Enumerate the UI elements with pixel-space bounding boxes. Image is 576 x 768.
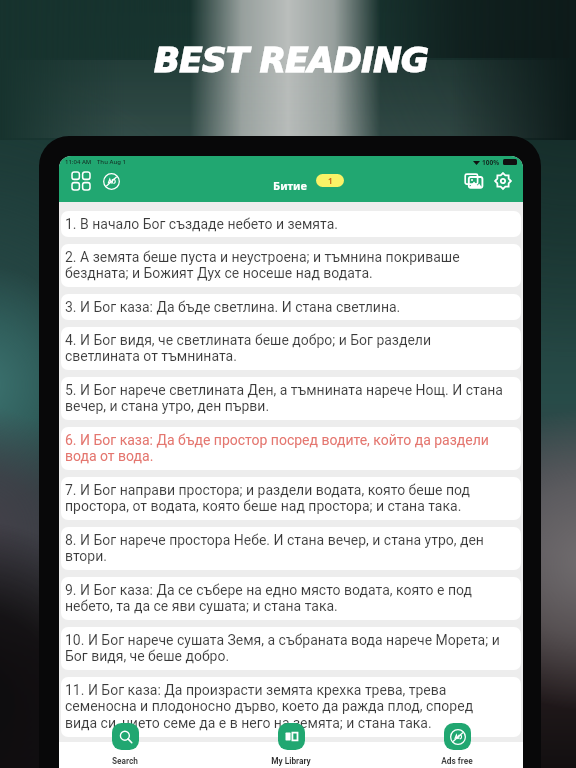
- staticText: 8. И Бог нарече простора Небе. И стана в…: [65, 532, 507, 565]
- button[interactable]: 11. И Бог каза: Да произрасти земята кре…: [61, 677, 521, 737]
- button[interactable]: My Library: [264, 742, 318, 768]
- button[interactable]: 5. И Бог нарече светлината Ден, а тъмнин…: [61, 377, 521, 420]
- staticText: 1. В начало Бог създаде небето и земята.: [65, 216, 338, 232]
- staticText: Ads free: [441, 756, 473, 766]
- staticText: 2. А земята беше пуста и неустроена; и т…: [65, 249, 507, 282]
- button[interactable]: 1. В начало Бог създаде небето и земята.: [61, 211, 521, 237]
- button[interactable]: 4. И Бог видя, че светлината беше добро;…: [61, 327, 521, 370]
- button[interactable]: 10. И Бог нарече сушата Земя, а събранат…: [61, 627, 521, 670]
- button[interactable]: Ads free: [430, 742, 484, 768]
- button[interactable]: Images: [461, 168, 487, 194]
- staticText: Thu Aug 1: [97, 158, 126, 166]
- button[interactable]: Search: [98, 742, 152, 768]
- staticText: 100%: [482, 158, 500, 167]
- staticText: 11:04 AM: [65, 158, 92, 166]
- staticText: 9. И Бог каза: Да се събере на едно мяст…: [65, 582, 507, 615]
- staticText: 4. И Бог видя, че светлината беше добро;…: [65, 332, 507, 365]
- button[interactable]: 3. И Бог каза: Да бъде светлина. И стана…: [61, 294, 521, 320]
- staticText: 5. И Бог нарече светлината Ден, а тъмнин…: [65, 382, 507, 415]
- button[interactable]: Chapters grid: [68, 168, 94, 194]
- button[interactable]: 2. А земята беше пуста и неустроена; и т…: [61, 244, 521, 287]
- button[interactable]: 7. И Бог направи простора; и раздели вод…: [61, 477, 521, 520]
- staticText: 3. И Бог каза: Да бъде светлина. И стана…: [65, 299, 401, 315]
- staticText: 1: [328, 175, 333, 186]
- button[interactable]: Settings: [490, 168, 516, 194]
- button[interactable]: 6. И Бог каза: Да бъде простор посред во…: [61, 427, 521, 470]
- staticText: 11. И Бог каза: Да произрасти земята кре…: [65, 682, 507, 732]
- button[interactable]: 1: [316, 174, 344, 187]
- button[interactable]: 9. И Бог каза: Да се събере на едно мяст…: [61, 577, 521, 620]
- button[interactable]: 8. И Бог нарече простора Небе. И стана в…: [61, 527, 521, 570]
- button[interactable]: Remove ads: [98, 168, 124, 194]
- button[interactable]: Битие: [273, 178, 307, 193]
- staticText: 6. И Бог каза: Да бъде простор посред во…: [65, 432, 507, 465]
- staticText: Search: [112, 756, 138, 766]
- staticText: 10. И Бог нарече сушата Земя, а събранат…: [65, 632, 507, 665]
- staticText: 7. И Бог направи простора; и раздели вод…: [65, 482, 507, 515]
- staticText: BEST READING: [154, 40, 429, 80]
- staticText: My Library: [271, 756, 311, 766]
